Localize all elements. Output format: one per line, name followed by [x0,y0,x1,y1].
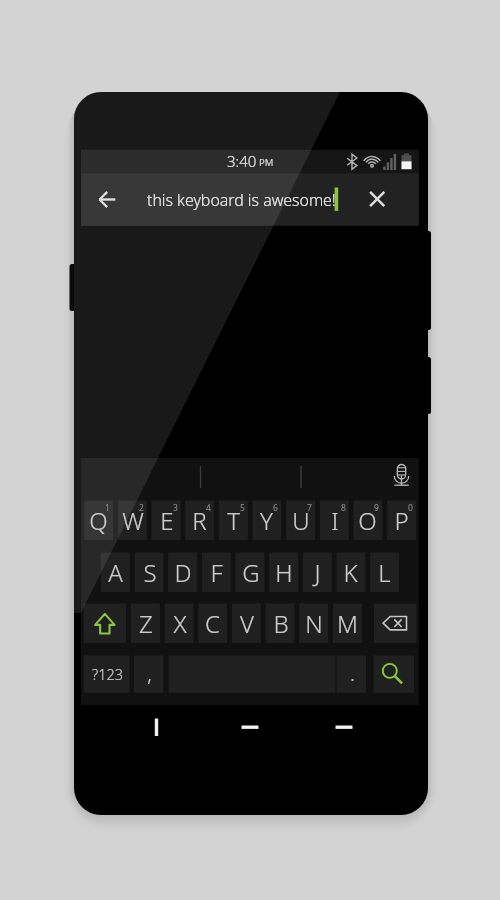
button[interactable]: L [370,553,399,593]
staticText: M [337,607,358,640]
button[interactable]: V [232,604,261,644]
button[interactable]: ?123 [84,656,130,693]
button[interactable]: M [333,604,362,644]
button[interactable]: Y [252,501,281,541]
staticText: this keyboard is awesome! [147,189,336,211]
staticText: ?123 [92,664,123,684]
staticText: B [273,607,289,640]
staticText: 6 [273,502,278,514]
button[interactable]: K [336,553,365,593]
button[interactable]: , [134,656,164,693]
staticText: P [394,504,409,537]
staticText: , [147,660,152,687]
button[interactable]: W [118,501,147,541]
staticText: A [108,556,123,589]
button[interactable]: Back [144,712,169,742]
staticText: Z [139,607,153,640]
staticText: 7 [307,502,312,514]
button[interactable]: Q [84,501,113,541]
staticText: S [143,556,157,589]
button[interactable]: P [387,501,416,541]
button[interactable]: U [286,501,315,541]
staticText: 3:40 [227,151,257,171]
button[interactable]: Back [92,177,123,222]
button[interactable]: X [165,604,194,644]
button[interactable]: Shift [84,604,126,644]
button[interactable]: A [101,553,130,593]
button[interactable]: D [168,553,197,593]
button[interactable]: H [269,553,298,593]
staticText: E [160,504,174,537]
staticText: 5 [240,502,245,514]
button[interactable]: Search [374,656,415,693]
button[interactable]: N [299,604,328,644]
staticText: Q [89,504,108,537]
staticText: W [122,504,144,537]
button[interactable]: Home [238,712,263,742]
staticText: L [378,556,391,589]
button[interactable]: F [202,553,231,593]
button[interactable]: S [135,553,164,593]
staticText: PM [259,156,274,169]
staticText: T [227,504,240,537]
button[interactable]: O [353,501,382,541]
staticText: X [173,607,187,640]
button[interactable]: this keyboard is awesome! [126,173,341,226]
button[interactable]: J [303,553,332,593]
button[interactable]: Recent apps [332,712,357,742]
staticText: G [242,556,260,589]
staticText: I [331,504,339,537]
staticText: 3 [173,502,178,514]
staticText: J [314,556,321,589]
button[interactable]: E [152,501,181,541]
staticText: 0 [408,502,413,514]
staticText: Y [260,504,273,537]
button[interactable]: I [320,501,349,541]
staticText: D [174,556,192,589]
staticText: C [205,607,220,640]
staticText: 9 [374,502,379,514]
button[interactable]: Backspace [374,604,417,644]
staticText: K [343,556,358,589]
staticText: R [192,504,207,537]
staticText: U [292,504,310,537]
button[interactable]: . [337,656,367,693]
staticText: F [210,556,223,589]
button[interactable]: B [266,604,295,644]
staticText: 2 [139,502,144,514]
staticText: 1 [105,502,110,514]
button[interactable]: T [219,501,248,541]
button[interactable]: R [185,501,214,541]
staticText: 4 [206,502,211,514]
staticText: H [275,556,293,589]
staticText: 8 [341,502,346,514]
button[interactable]: G [236,553,265,593]
staticText: . [350,660,355,687]
button[interactable]: Clear text [362,177,393,222]
staticText: V [240,607,254,640]
button[interactable]: Voice input [388,462,416,492]
button[interactable]: C [198,604,227,644]
button[interactable]: Z [131,604,160,644]
staticText: O [358,504,377,537]
staticText: N [305,607,323,640]
